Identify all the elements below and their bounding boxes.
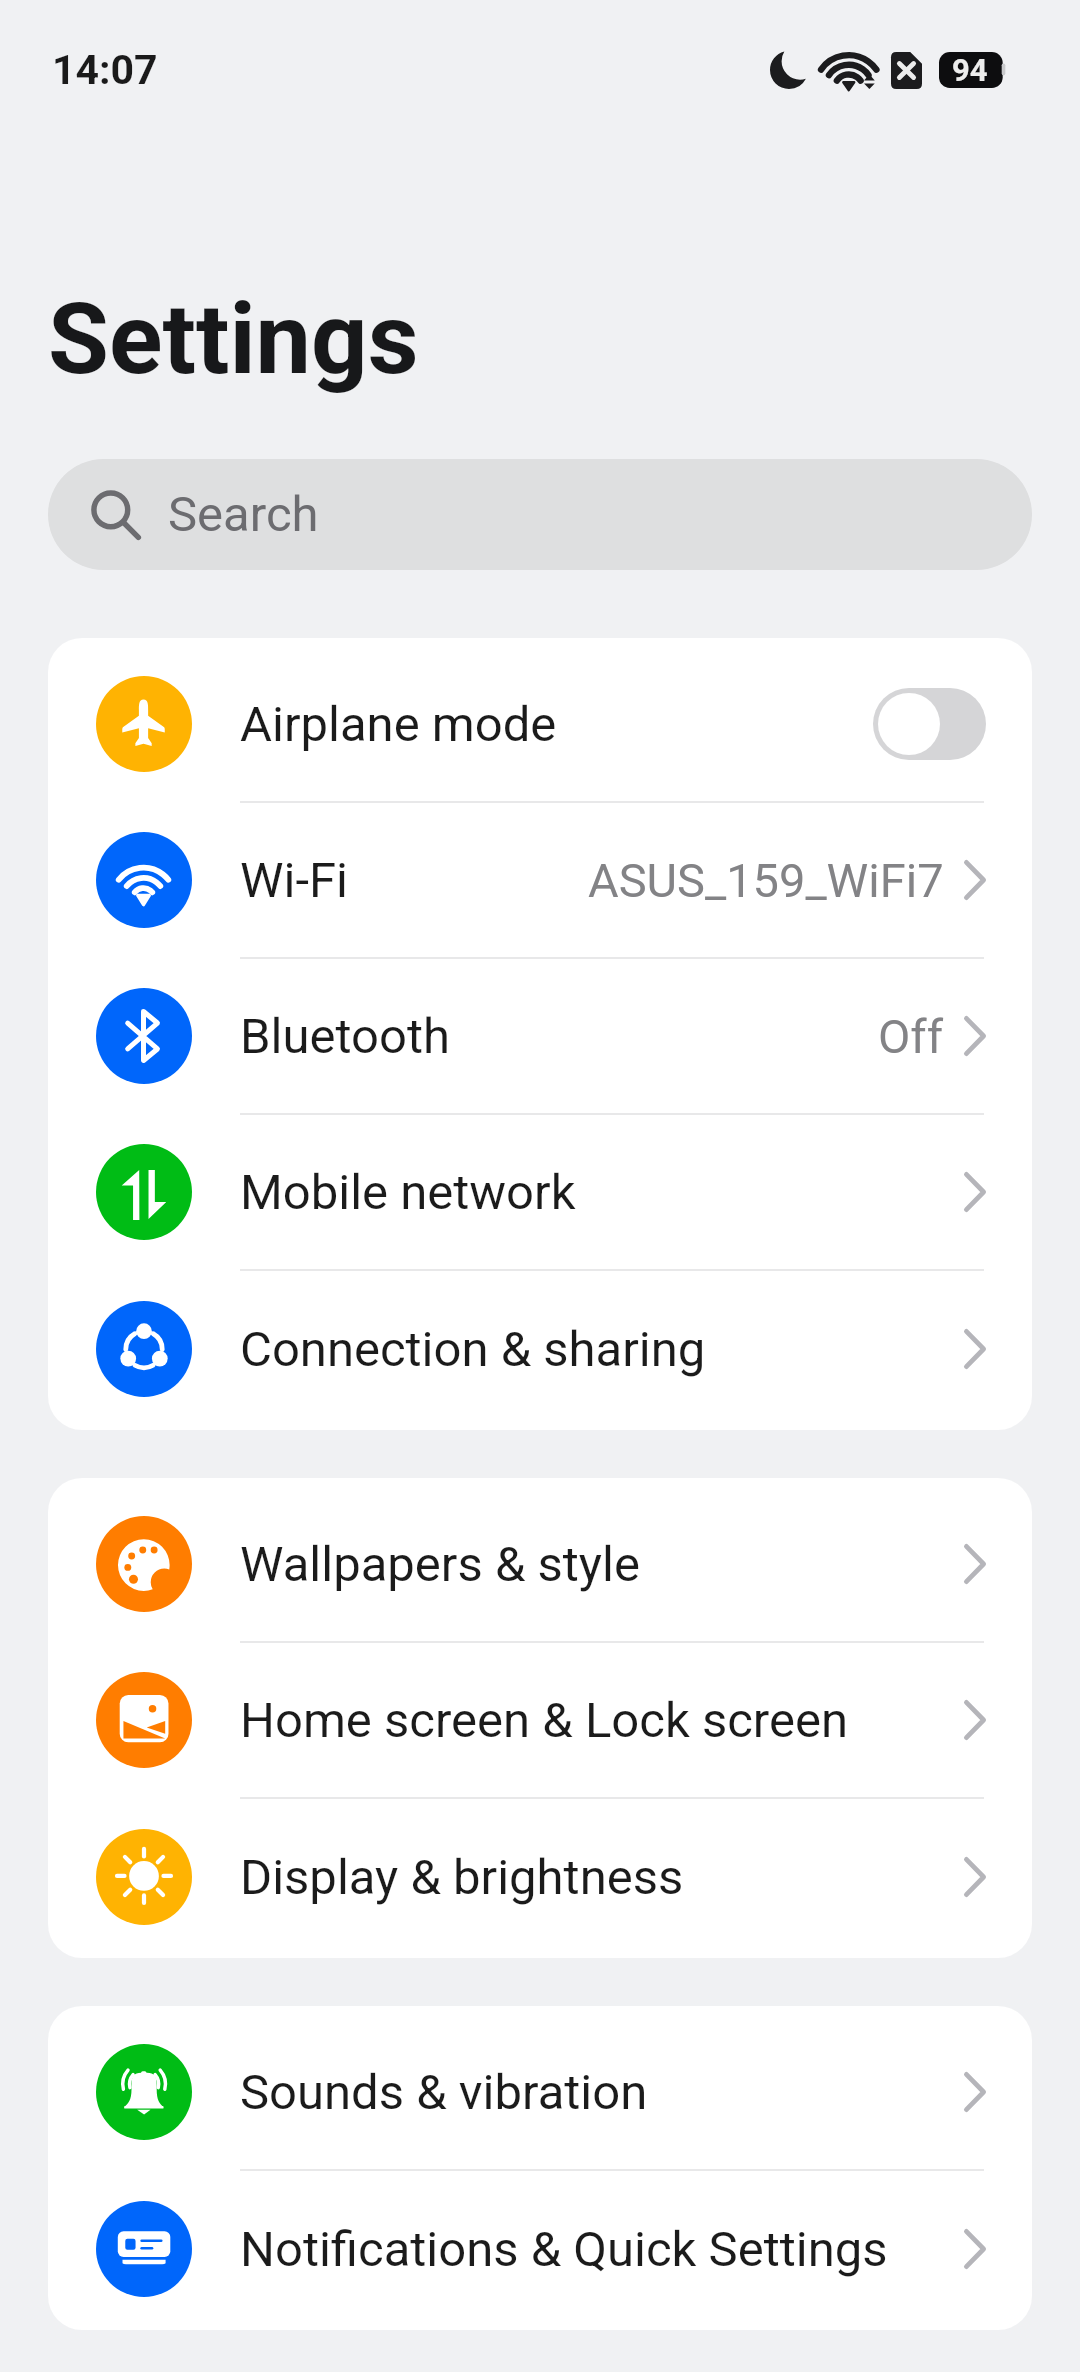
staticText: Home screen & Lock screen xyxy=(240,1692,849,1749)
staticText: Display & brightness xyxy=(240,1849,684,1906)
button[interactable]: Airplane mode xyxy=(48,647,1032,803)
button[interactable]: Bluetooth xyxy=(48,959,1032,1115)
button[interactable]: Wi-Fi xyxy=(48,803,1032,959)
staticText: Search xyxy=(168,486,319,543)
staticText: 94 xyxy=(952,52,988,88)
button[interactable]: Connection & sharing xyxy=(48,1271,1032,1427)
staticText: Connection & sharing xyxy=(240,1321,706,1378)
staticText: Wallpapers & style xyxy=(240,1536,640,1593)
button[interactable]: Mobile network xyxy=(48,1115,1032,1271)
staticText: 14:07 xyxy=(52,46,158,94)
staticText: ASUS_159_WiFi7 xyxy=(588,853,944,908)
staticText: Notifications & Quick Settings xyxy=(240,2221,888,2278)
staticText: Off xyxy=(878,1009,944,1064)
staticText: Mobile network xyxy=(240,1164,576,1221)
button[interactable]: Wallpapers & style xyxy=(48,1487,1032,1643)
button[interactable]: Home screen & Lock screen xyxy=(48,1643,1032,1799)
button[interactable]: Search xyxy=(48,459,1032,570)
staticText: Wi-Fi xyxy=(240,852,348,909)
staticText: Sounds & vibration xyxy=(240,2064,648,2121)
button[interactable]: Notifications & Quick Settings xyxy=(48,2171,1032,2327)
button[interactable]: Sounds & vibration xyxy=(48,2015,1032,2171)
staticText: Airplane mode xyxy=(240,696,557,753)
staticText: Settings xyxy=(48,281,419,397)
staticText: Bluetooth xyxy=(240,1008,450,1065)
button[interactable]: Display & brightness xyxy=(48,1799,1032,1955)
